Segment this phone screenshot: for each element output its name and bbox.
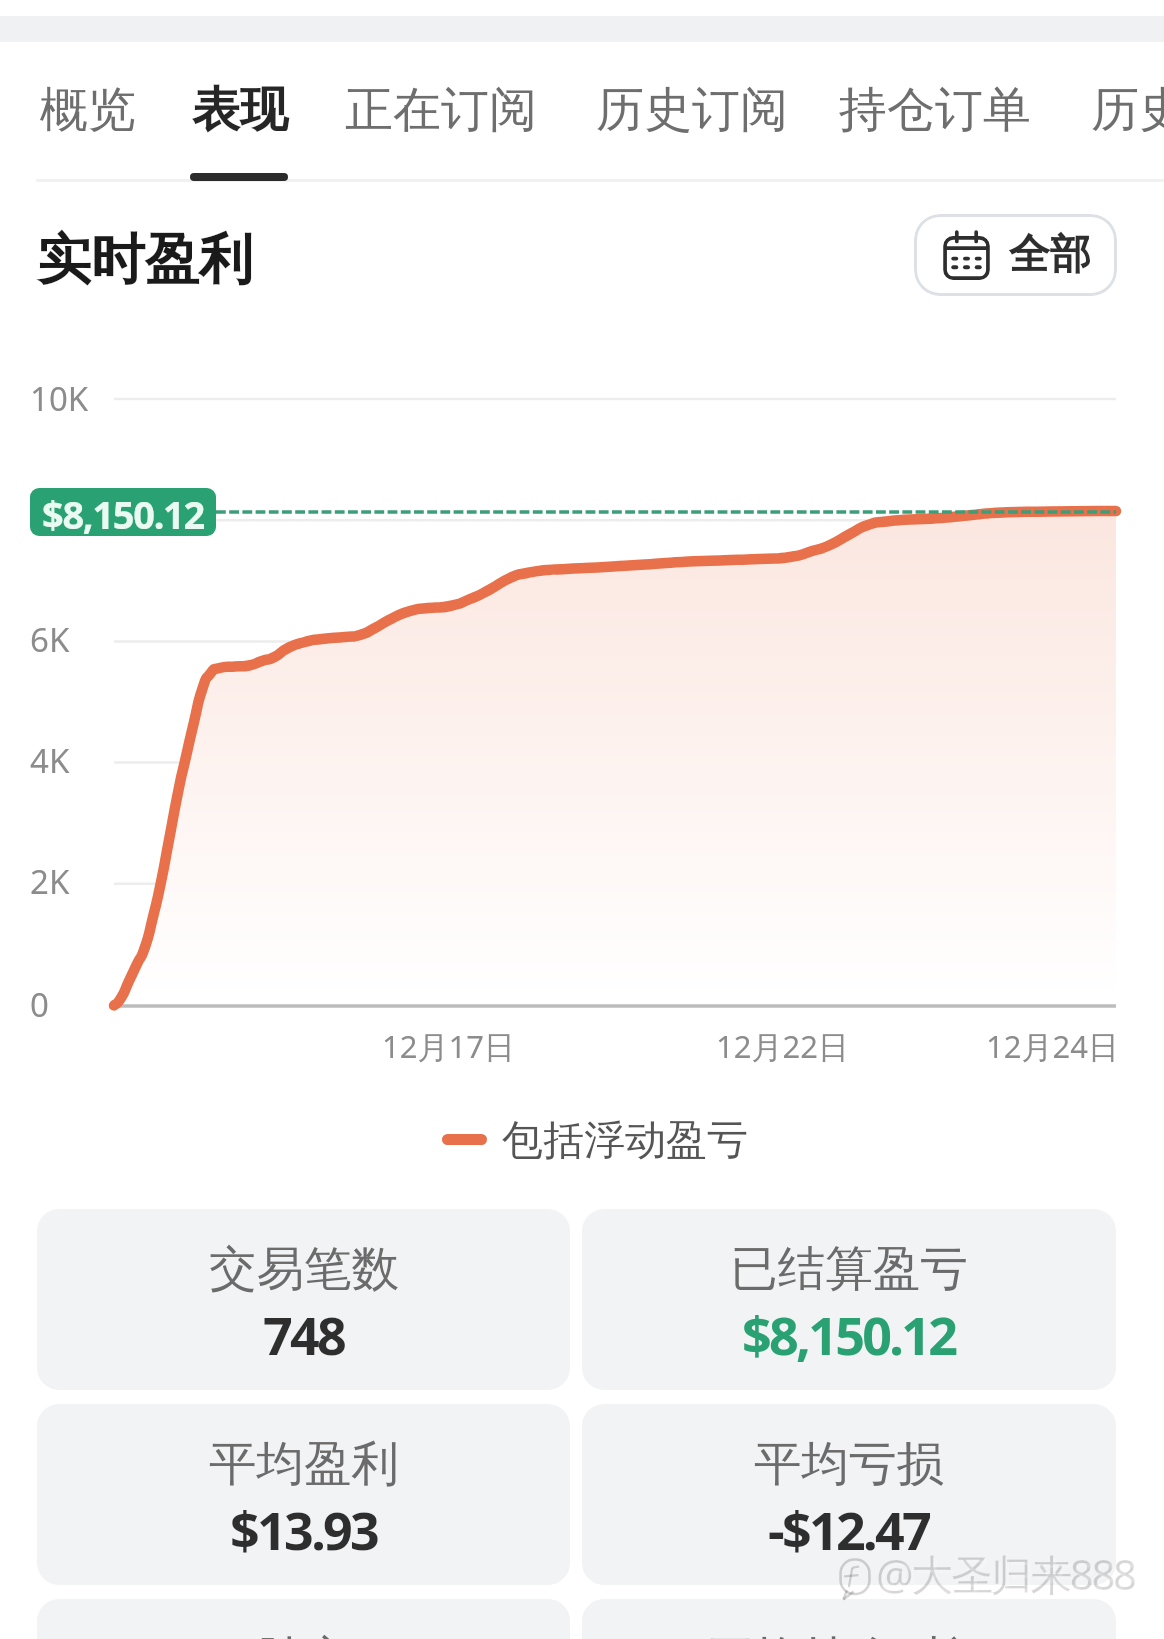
staticText: $8,150.12 bbox=[742, 1299, 956, 1370]
staticText: 748 bbox=[263, 1299, 345, 1370]
staticText: 包括浮动盈亏 bbox=[502, 1115, 748, 1167]
staticText: 2K bbox=[30, 859, 70, 904]
staticText: 0 bbox=[30, 982, 49, 1027]
button[interactable]: 持仓订单 bbox=[817, 45, 1053, 175]
button[interactable]: 胜率 bbox=[37, 1599, 570, 1639]
button[interactable]: 平均持仓时间 bbox=[582, 1599, 1116, 1639]
staticText: @大圣归来888 bbox=[876, 1545, 1135, 1602]
staticText: 平均持仓时间 bbox=[707, 1629, 992, 1639]
staticText: 胜率 bbox=[256, 1629, 351, 1639]
staticText: 概览 bbox=[40, 80, 136, 140]
staticText: @大圣归来888 bbox=[879, 1548, 1138, 1605]
button[interactable]: 平均亏损 bbox=[582, 1404, 1116, 1585]
staticText: 历史 bbox=[1091, 80, 1164, 140]
button[interactable]: 已结算盈亏 bbox=[582, 1209, 1116, 1390]
staticText: 6K bbox=[30, 617, 70, 662]
staticText: 4K bbox=[30, 738, 70, 783]
button[interactable]: 概览 bbox=[18, 45, 158, 175]
staticText: 持仓订单 bbox=[839, 80, 1031, 140]
button[interactable]: 选择日期范围：全部 bbox=[914, 214, 1117, 296]
staticText: 12月24日 bbox=[986, 1025, 1119, 1067]
staticText: 全部 bbox=[1009, 229, 1091, 281]
button[interactable]: 历史 bbox=[1069, 45, 1164, 175]
button[interactable]: 历史订阅 bbox=[574, 45, 810, 175]
staticText: $13.93 bbox=[230, 1494, 378, 1565]
staticText: 历史订阅 bbox=[596, 80, 788, 140]
button[interactable]: 交易笔数 bbox=[37, 1209, 570, 1390]
staticText: 表现 bbox=[192, 80, 288, 140]
button[interactable]: 平均盈利 bbox=[37, 1404, 570, 1585]
staticText: -$12.47 bbox=[768, 1494, 930, 1565]
staticText: 已结算盈亏 bbox=[730, 1239, 968, 1299]
staticText: 实时盈利 bbox=[37, 226, 253, 294]
button[interactable]: 正在订阅 bbox=[323, 45, 559, 175]
staticText: $8,150.12 bbox=[42, 488, 204, 536]
staticText: 正在订阅 bbox=[345, 80, 537, 140]
button[interactable]: 表现 bbox=[170, 45, 310, 175]
staticText: 12月22日 bbox=[716, 1025, 849, 1067]
staticText: 平均亏损 bbox=[754, 1434, 944, 1494]
staticText: 10K bbox=[30, 376, 89, 421]
staticText: 交易笔数 bbox=[209, 1239, 399, 1299]
staticText: 平均盈利 bbox=[209, 1434, 399, 1494]
staticText: 12月17日 bbox=[382, 1025, 515, 1067]
